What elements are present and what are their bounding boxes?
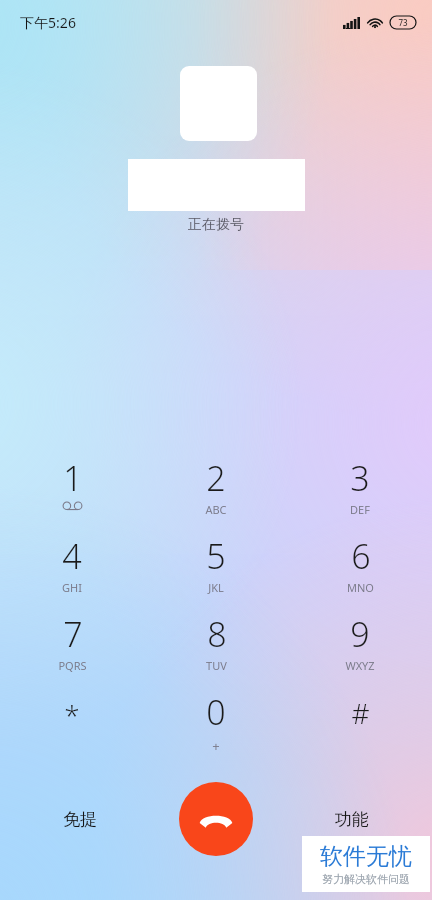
button[interactable]: 4 (0, 533, 144, 611)
button[interactable]: 9 (288, 611, 432, 689)
staticText: 2 (206, 455, 226, 501)
staticText: 73 (398, 17, 408, 28)
button[interactable]: * (0, 689, 144, 767)
staticText: 正在拨号 (188, 216, 244, 234)
staticText: 软件无忧 (320, 842, 412, 871)
staticText: 下午5:26 (20, 13, 76, 32)
staticText: 0 (206, 689, 226, 735)
staticText: 8 (207, 611, 227, 657)
staticText: 功能 (335, 809, 369, 830)
staticText: 努力解决软件问题 (322, 872, 410, 886)
button[interactable]: 8 (144, 611, 288, 689)
button[interactable]: 7 (0, 611, 144, 689)
button[interactable]: 3 (288, 455, 432, 533)
staticText: 7 (63, 611, 83, 657)
staticText: TUV (206, 658, 227, 673)
staticText: 6 (351, 533, 371, 579)
button[interactable]: 功能 (323, 799, 381, 840)
staticText: * (64, 696, 80, 734)
staticText: 免提 (63, 809, 97, 830)
staticText: DEF (350, 502, 370, 517)
staticText: PQRS (58, 658, 87, 673)
staticText: GHI (62, 580, 82, 595)
staticText: ABC (205, 502, 227, 517)
button[interactable]: 免提 (51, 799, 109, 840)
staticText: 5 (206, 533, 226, 579)
button[interactable]: 2 (144, 455, 288, 533)
staticText: 9 (350, 611, 370, 657)
staticText: JKL (208, 580, 224, 595)
button[interactable]: 1 (0, 455, 144, 533)
staticText: 1 (63, 455, 83, 501)
button[interactable]: 5 (144, 533, 288, 611)
button[interactable]: 6 (288, 533, 432, 611)
staticText: 3 (350, 455, 370, 501)
staticText: WXYZ (345, 658, 375, 673)
staticText: MNO (347, 580, 374, 595)
staticText: + (212, 737, 220, 755)
button[interactable]: 0 (144, 689, 288, 767)
staticText: 4 (62, 533, 82, 579)
button[interactable]: # (288, 689, 432, 767)
staticText: # (351, 694, 370, 732)
button[interactable]: End call (179, 782, 253, 856)
